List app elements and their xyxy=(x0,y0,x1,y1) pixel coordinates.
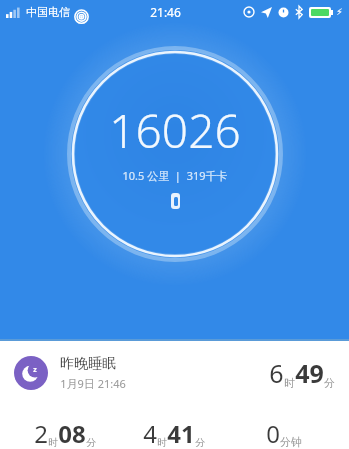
staticText: 08 xyxy=(58,417,86,449)
button[interactable]: z xyxy=(0,341,349,449)
staticText: 分 xyxy=(86,436,96,449)
staticText: 4 xyxy=(143,417,157,449)
staticText: 0 xyxy=(266,417,280,449)
button[interactable]: 4 xyxy=(119,417,229,449)
staticText: 16026 xyxy=(109,99,241,162)
staticText: 41 xyxy=(167,417,195,449)
staticText: 中国电信 xyxy=(26,5,70,19)
staticText: 分 xyxy=(324,376,335,390)
button[interactable]: 2 xyxy=(10,417,119,449)
staticText: z xyxy=(33,365,37,375)
staticText: 时 xyxy=(48,436,58,449)
staticText: 分 xyxy=(195,436,205,449)
staticText: 21:46 xyxy=(150,4,181,20)
staticText: 时 xyxy=(284,376,295,390)
staticText: 2 xyxy=(34,417,48,449)
staticText: 6 xyxy=(269,356,284,390)
button[interactable]: Daily steps xyxy=(57,36,293,272)
staticText: 1月9日 21:46 xyxy=(60,376,126,391)
staticText: ⚡ xyxy=(336,7,343,17)
staticText: 昨晚睡眠 xyxy=(60,355,116,373)
staticText: 时 xyxy=(157,436,167,449)
staticText: 分钟 xyxy=(280,435,302,449)
staticText: 10.5 公里 | 319千卡 xyxy=(122,168,228,183)
staticText: 49 xyxy=(295,356,324,390)
